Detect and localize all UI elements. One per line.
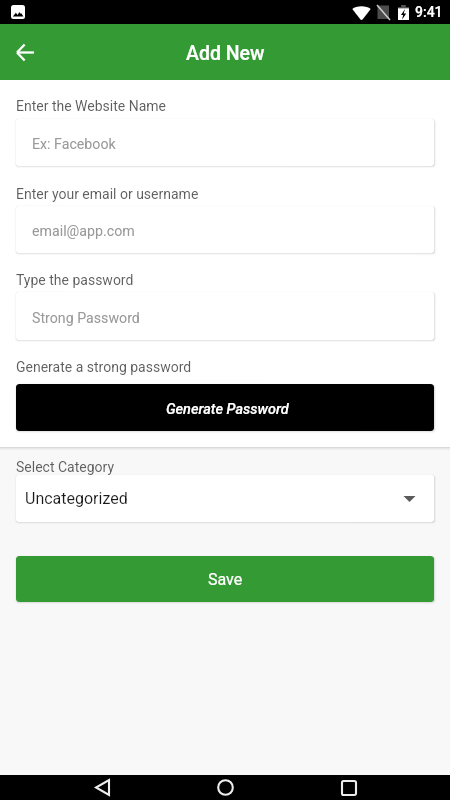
- staticText: Strong Password: [32, 310, 140, 327]
- staticText: Type the password: [16, 272, 134, 288]
- button[interactable]: Back: [80, 775, 124, 800]
- button[interactable]: Ex: Facebook: [16, 119, 434, 166]
- staticText: Ex: Facebook: [32, 136, 116, 153]
- staticText: Uncategorized: [25, 489, 128, 508]
- button[interactable]: Uncategorized: [16, 475, 434, 522]
- staticText: Save: [208, 570, 243, 589]
- staticText: Select Category: [16, 459, 115, 475]
- staticText: Enter the Website Name: [16, 98, 167, 114]
- button[interactable]: Back: [7, 34, 43, 70]
- staticText: Generate a strong password: [16, 359, 192, 375]
- staticText: email@app.com: [32, 223, 135, 240]
- button[interactable]: Strong Password: [16, 292, 434, 340]
- button[interactable]: Home: [203, 775, 247, 800]
- button[interactable]: email@app.com: [16, 206, 434, 253]
- staticText: Generate Password: [166, 401, 289, 418]
- button[interactable]: Generate Password: [16, 384, 434, 431]
- staticText: 9:41: [415, 4, 443, 20]
- button[interactable]: Save: [16, 556, 434, 602]
- button[interactable]: Recents: [327, 775, 371, 800]
- staticText: Enter your email or username: [16, 186, 199, 202]
- staticText: Add New: [186, 42, 265, 65]
